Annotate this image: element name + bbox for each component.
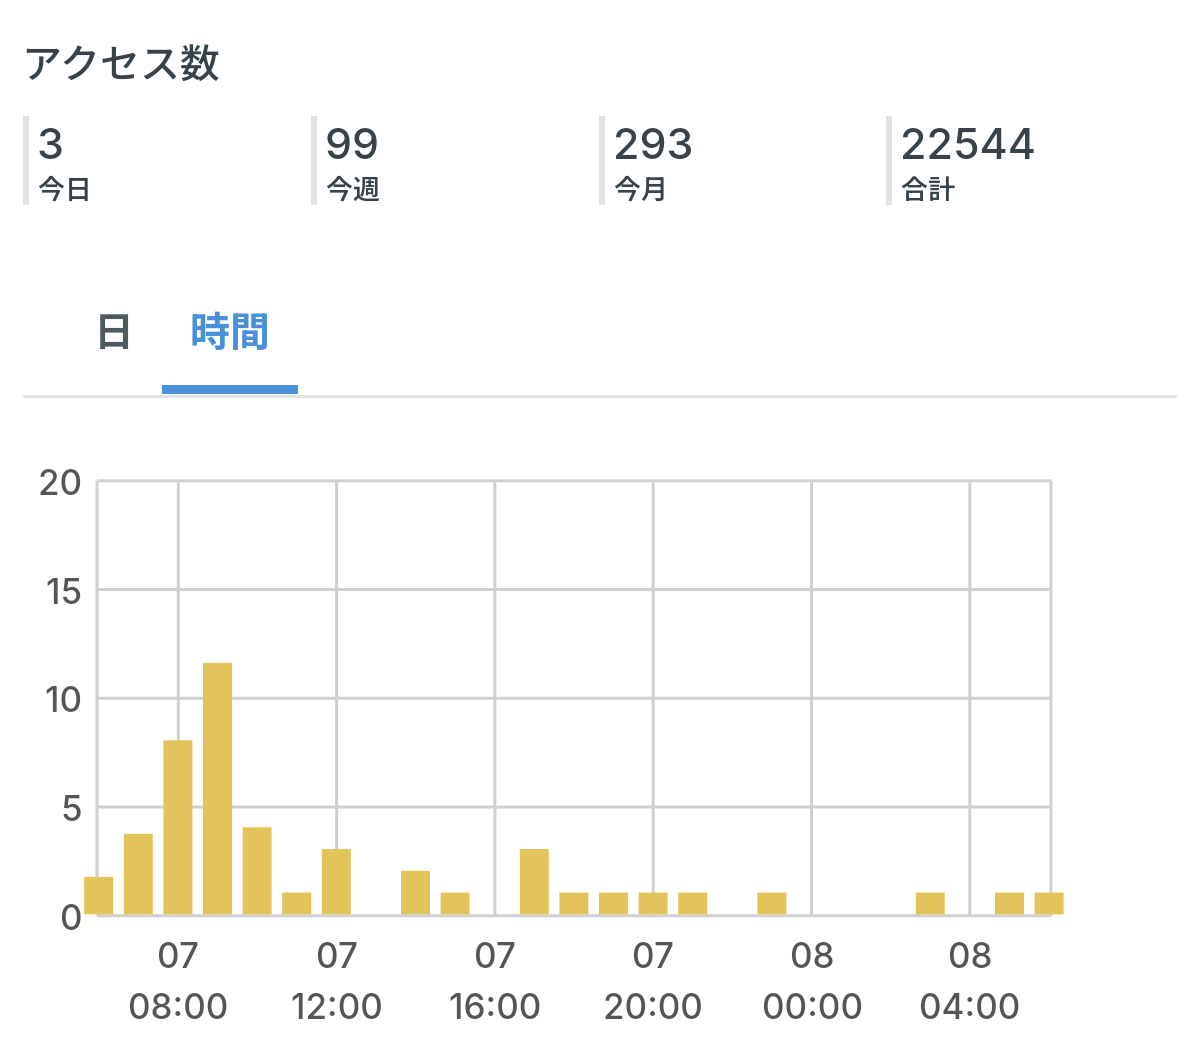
staticText: 3 xyxy=(37,117,64,169)
staticText: 99 xyxy=(325,117,380,169)
staticText: 0 xyxy=(60,896,83,938)
button[interactable]: 99 xyxy=(311,116,581,205)
staticText: 07 xyxy=(157,934,199,976)
staticText: 22544 xyxy=(900,117,1037,169)
staticText: 今週 xyxy=(326,168,380,205)
staticText: 今月 xyxy=(614,168,668,205)
staticText: 今日 xyxy=(38,168,92,205)
other: Hourly access count bar chart xyxy=(0,0,1200,1048)
staticText: 合計 xyxy=(901,168,955,205)
staticText: 00:00 xyxy=(762,985,863,1027)
staticText: 日 xyxy=(94,300,134,358)
staticText: アクセス数 xyxy=(22,32,220,90)
button[interactable]: 293 xyxy=(599,116,869,205)
staticText: 293 xyxy=(613,117,694,169)
staticText: 5 xyxy=(61,787,83,829)
staticText: 07 xyxy=(474,934,516,976)
button[interactable]: 22544 xyxy=(886,116,1156,205)
staticText: 07 xyxy=(316,934,358,976)
staticText: 10 xyxy=(45,678,83,720)
staticText: 08 xyxy=(948,934,993,976)
button[interactable]: 3 xyxy=(23,116,293,205)
staticText: 16:00 xyxy=(449,985,542,1027)
staticText: 07 xyxy=(632,934,674,976)
staticText: 15 xyxy=(46,570,83,612)
button[interactable]: 時間 xyxy=(160,300,300,398)
staticText: 20 xyxy=(38,461,83,503)
staticText: 08 xyxy=(790,934,835,976)
staticText: 時間 xyxy=(190,300,270,358)
button[interactable]: 日 xyxy=(67,300,161,398)
staticText: 08:00 xyxy=(128,985,229,1027)
staticText: 12:00 xyxy=(291,985,383,1027)
staticText: 04:00 xyxy=(919,985,1021,1027)
staticText: 20:00 xyxy=(603,985,703,1027)
